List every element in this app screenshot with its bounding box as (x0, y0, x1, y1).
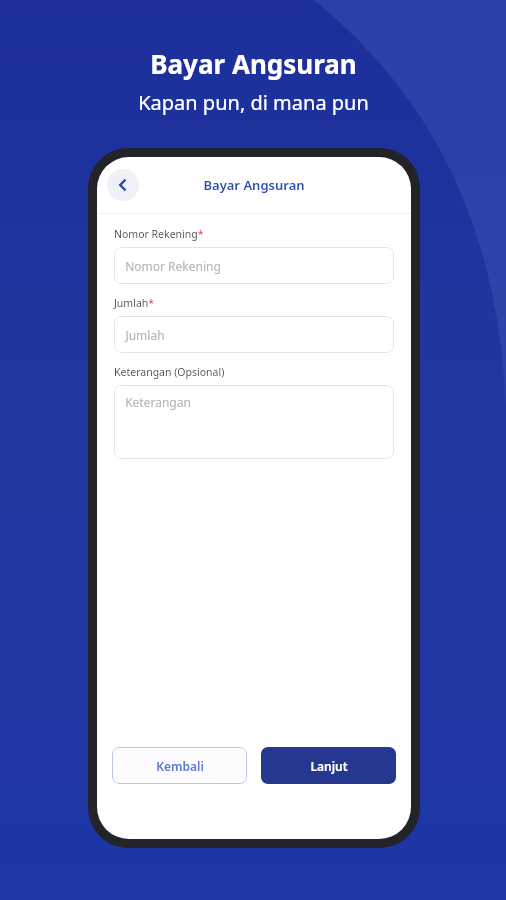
staticText: Jumlah (125, 327, 165, 343)
button[interactable]: Back (107, 169, 139, 201)
staticText: Kembali (156, 758, 204, 774)
staticText: Nomor Rekening (125, 258, 221, 274)
button[interactable]: Jumlah (114, 316, 394, 353)
button[interactable]: Keterangan (114, 385, 394, 459)
staticText: Lanjut (310, 758, 348, 774)
button[interactable]: Kembali (112, 747, 247, 784)
button[interactable]: Nomor Rekening (114, 247, 394, 284)
staticText: Keterangan (125, 394, 191, 410)
staticText: Kapan pun, di mana pun (138, 89, 369, 116)
staticText: Jumlah* (114, 296, 155, 310)
staticText: Keterangan (Opsional) (114, 365, 225, 379)
staticText: Nomor Rekening* (114, 227, 204, 241)
staticText: Bayar Angsuran (203, 176, 305, 194)
button[interactable]: Lanjut (261, 747, 396, 784)
staticText: Bayar Angsuran (150, 46, 357, 81)
